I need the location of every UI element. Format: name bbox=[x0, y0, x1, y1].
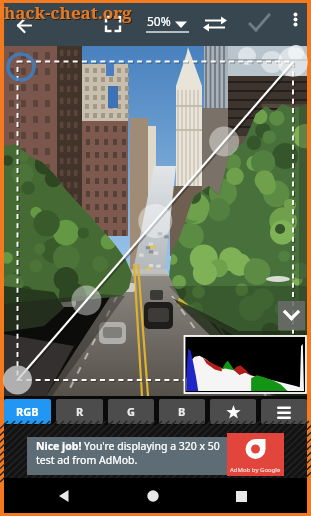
button[interactable]: AdMob by Google bbox=[227, 433, 284, 476]
button[interactable]: G bbox=[108, 399, 154, 424]
button[interactable] bbox=[225, 480, 257, 512]
button[interactable] bbox=[278, 301, 305, 330]
button[interactable] bbox=[12, 13, 38, 39]
staticText: hack-cheat.org bbox=[5, 2, 133, 25]
button[interactable] bbox=[287, 9, 305, 35]
staticText: Nice job! You're displaying a 320 x 50 bbox=[36, 439, 220, 453]
staticText: R bbox=[76, 404, 84, 419]
button[interactable] bbox=[246, 11, 272, 37]
button[interactable] bbox=[137, 480, 169, 512]
staticText: test ad from AdMob. bbox=[36, 453, 138, 467]
staticText: 50% bbox=[147, 13, 171, 29]
staticText: B bbox=[178, 404, 186, 419]
button[interactable]: B bbox=[159, 399, 205, 424]
button[interactable] bbox=[49, 480, 81, 512]
button[interactable] bbox=[104, 15, 122, 33]
staticText: AdMob by Google bbox=[230, 466, 281, 474]
staticText: RGB bbox=[16, 404, 39, 419]
button[interactable]: 50% bbox=[145, 13, 191, 37]
staticText: hack-cheat.org bbox=[4, 1, 132, 24]
button[interactable]: R bbox=[56, 399, 103, 424]
button[interactable]: RGB bbox=[4, 399, 51, 424]
staticText: G bbox=[127, 404, 135, 419]
button[interactable] bbox=[261, 399, 307, 424]
button[interactable]: Nice job! You're displaying a 320 x 50 bbox=[4, 425, 307, 478]
button[interactable] bbox=[200, 12, 230, 36]
button[interactable] bbox=[210, 399, 256, 424]
